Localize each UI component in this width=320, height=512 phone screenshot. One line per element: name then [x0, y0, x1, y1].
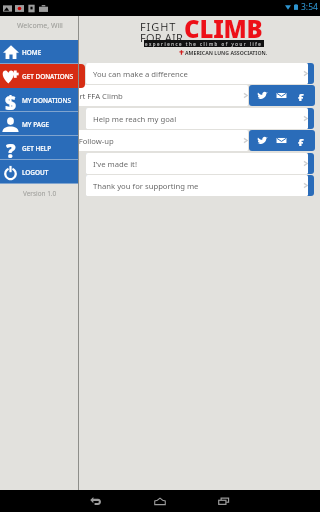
staticText: 3:54: [301, 1, 318, 13]
staticText: Version 1.0: [23, 189, 57, 198]
staticText: f: [298, 90, 304, 101]
button[interactable]: Share on Twitter: [255, 88, 270, 103]
staticText: I've made it!: [93, 159, 137, 169]
button[interactable]: GET DONATIONS: [0, 64, 85, 88]
button[interactable]: Share by email: [274, 88, 289, 103]
button[interactable]: Post event Follow-up: [26, 130, 248, 151]
button[interactable]: You can make a difference: [86, 63, 308, 84]
button[interactable]: Back: [64, 490, 128, 512]
button[interactable]: HOME: [0, 40, 79, 64]
staticText: Post event Follow-up: [39, 136, 114, 146]
button[interactable]: Help me reach my goal: [86, 108, 308, 129]
button[interactable]: Recent apps: [192, 490, 256, 512]
staticText: Thank you for supporting me: [93, 181, 199, 191]
button[interactable]: Thank you for supporting me: [86, 175, 308, 196]
staticText: ?: [6, 138, 16, 158]
button[interactable]: Share on Facebook: [293, 88, 308, 103]
button[interactable]: Share on Facebook: [293, 133, 308, 148]
staticText: LOGOUT: [22, 168, 49, 177]
staticText: GET DONATIONS: [22, 72, 74, 81]
staticText: $: [5, 90, 16, 110]
staticText: Welcome, Will: [17, 21, 63, 31]
staticText: AMERICAN LUNG ASSOCIATION.: [185, 49, 268, 56]
staticText: FIGHT: [140, 19, 177, 34]
button[interactable]: Share by email: [274, 133, 289, 148]
staticText: FOR AIR: [140, 30, 184, 45]
staticText: MY DONATIONS: [22, 96, 71, 105]
staticText: Please Support FFA Climb: [31, 91, 123, 101]
button[interactable]: LOGOUT: [0, 160, 79, 184]
button[interactable]: ?: [0, 136, 79, 160]
staticText: Help me reach my goal: [93, 114, 177, 124]
button[interactable]: I've made it!: [86, 153, 308, 174]
staticText: HOME: [22, 48, 42, 57]
button[interactable]: Share on Twitter: [255, 133, 270, 148]
staticText: experience the climb of your life: [145, 41, 263, 47]
staticText: MY PAGE: [22, 120, 50, 129]
staticText: CLIMB: [184, 12, 263, 45]
button[interactable]: $: [0, 88, 79, 112]
button[interactable]: MY PAGE: [0, 112, 79, 136]
staticText: You can make a difference: [93, 69, 188, 79]
staticText: f: [298, 135, 304, 146]
staticText: GET HELP: [22, 144, 52, 153]
button[interactable]: Home: [128, 490, 192, 512]
button[interactable]: Please Support FFA Climb: [26, 85, 248, 106]
